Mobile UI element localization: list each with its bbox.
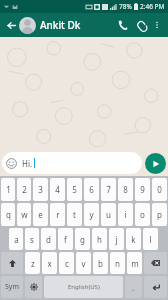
button[interactable]: h bbox=[92, 228, 107, 250]
button[interactable] bbox=[144, 276, 167, 298]
button[interactable]: n bbox=[110, 252, 125, 274]
button[interactable]: Ankit Dk bbox=[40, 18, 114, 32]
button[interactable]: . bbox=[125, 276, 142, 298]
button[interactable]: v bbox=[76, 252, 91, 274]
staticText: Ankit Dk bbox=[40, 18, 81, 32]
staticText: u bbox=[106, 209, 111, 220]
staticText: Sym bbox=[5, 282, 19, 292]
button[interactable]: Emoji bbox=[6, 158, 17, 169]
button[interactable]: a bbox=[9, 228, 23, 250]
staticText: v bbox=[81, 258, 86, 269]
button[interactable]: u bbox=[101, 203, 116, 226]
button[interactable]: 9 bbox=[135, 178, 150, 201]
button[interactable]: c bbox=[59, 252, 74, 274]
staticText: Hi. bbox=[22, 158, 33, 169]
button[interactable]: 6 bbox=[84, 178, 99, 201]
button[interactable]: Contact photo bbox=[19, 17, 36, 34]
button[interactable]: Sym bbox=[1, 276, 23, 298]
staticText: 9 bbox=[140, 184, 145, 195]
button[interactable]: t bbox=[67, 203, 82, 226]
staticText: j bbox=[115, 234, 118, 245]
staticText: 78% bbox=[119, 2, 132, 11]
staticText: t bbox=[73, 209, 76, 220]
button[interactable]: m bbox=[127, 252, 142, 274]
button[interactable]: Back bbox=[4, 18, 18, 32]
staticText: 6 bbox=[89, 184, 94, 195]
staticText: l bbox=[149, 234, 152, 245]
button[interactable]: y bbox=[84, 203, 99, 226]
button[interactable]: Send bbox=[145, 153, 166, 174]
button[interactable]: b bbox=[93, 252, 108, 274]
staticText: . bbox=[132, 282, 135, 293]
staticText: p bbox=[157, 209, 162, 220]
button[interactable]: q bbox=[1, 203, 15, 226]
staticText: m bbox=[131, 258, 139, 269]
button[interactable]: English(US) bbox=[44, 276, 123, 298]
staticText: 2 bbox=[22, 184, 27, 195]
staticText: 3 bbox=[38, 184, 43, 195]
staticText: d bbox=[46, 234, 51, 245]
button[interactable]: d bbox=[41, 228, 56, 250]
button[interactable]: 3 bbox=[33, 178, 48, 201]
button[interactable]: Call bbox=[114, 16, 132, 34]
button[interactable]: 2 bbox=[17, 178, 31, 201]
staticText: z bbox=[31, 258, 35, 269]
button[interactable]: Shift bbox=[1, 252, 23, 274]
staticText: k bbox=[131, 234, 136, 245]
staticText: n bbox=[115, 258, 120, 269]
button[interactable]: 1 bbox=[1, 178, 15, 201]
staticText: w bbox=[21, 209, 28, 220]
staticText: r bbox=[56, 209, 60, 220]
staticText: f bbox=[64, 234, 67, 245]
button[interactable]: r bbox=[50, 203, 65, 226]
button[interactable]: s bbox=[25, 228, 39, 250]
button[interactable] bbox=[25, 276, 42, 298]
staticText: e bbox=[38, 209, 43, 220]
button[interactable]: l bbox=[143, 228, 158, 250]
button[interactable]: x bbox=[42, 252, 57, 274]
staticText: h bbox=[97, 234, 102, 245]
button[interactable]: z bbox=[25, 252, 40, 274]
button[interactable]: p bbox=[152, 203, 167, 226]
staticText: o bbox=[140, 209, 145, 220]
button[interactable]: 8 bbox=[118, 178, 133, 201]
button[interactable]: 4 bbox=[50, 178, 65, 201]
staticText: 2:46 PM bbox=[140, 2, 165, 11]
staticText: 7 bbox=[106, 184, 111, 195]
button[interactable]: 7 bbox=[101, 178, 116, 201]
button[interactable]: 0 bbox=[152, 178, 167, 201]
staticText: i bbox=[124, 209, 127, 220]
button[interactable]: 5 bbox=[67, 178, 82, 201]
button[interactable]: More options bbox=[150, 18, 164, 32]
button[interactable]: i bbox=[118, 203, 133, 226]
button[interactable]: Backspace bbox=[144, 252, 167, 274]
staticText: s bbox=[30, 234, 34, 245]
button[interactable]: w bbox=[17, 203, 31, 226]
staticText: 8 bbox=[123, 184, 128, 195]
button[interactable]: e bbox=[33, 203, 48, 226]
staticText: x bbox=[47, 258, 52, 269]
staticText: English(US) bbox=[68, 283, 100, 291]
staticText: 0 bbox=[157, 184, 162, 195]
button[interactable]: Attach bbox=[132, 16, 150, 34]
staticText: 1 bbox=[6, 184, 11, 195]
button[interactable]: j bbox=[109, 228, 124, 250]
staticText: 5 bbox=[72, 184, 77, 195]
button[interactable]: f bbox=[58, 228, 73, 250]
button[interactable]: g bbox=[75, 228, 90, 250]
button[interactable]: o bbox=[135, 203, 150, 226]
button[interactable]: Emoji bbox=[2, 152, 142, 174]
staticText: g bbox=[80, 234, 85, 245]
staticText: q bbox=[6, 209, 11, 220]
staticText: b bbox=[98, 258, 103, 269]
staticText: 4 bbox=[55, 184, 60, 195]
staticText: a bbox=[14, 234, 19, 245]
button[interactable]: k bbox=[126, 228, 141, 250]
staticText: c bbox=[65, 258, 69, 269]
staticText: y bbox=[89, 209, 94, 220]
